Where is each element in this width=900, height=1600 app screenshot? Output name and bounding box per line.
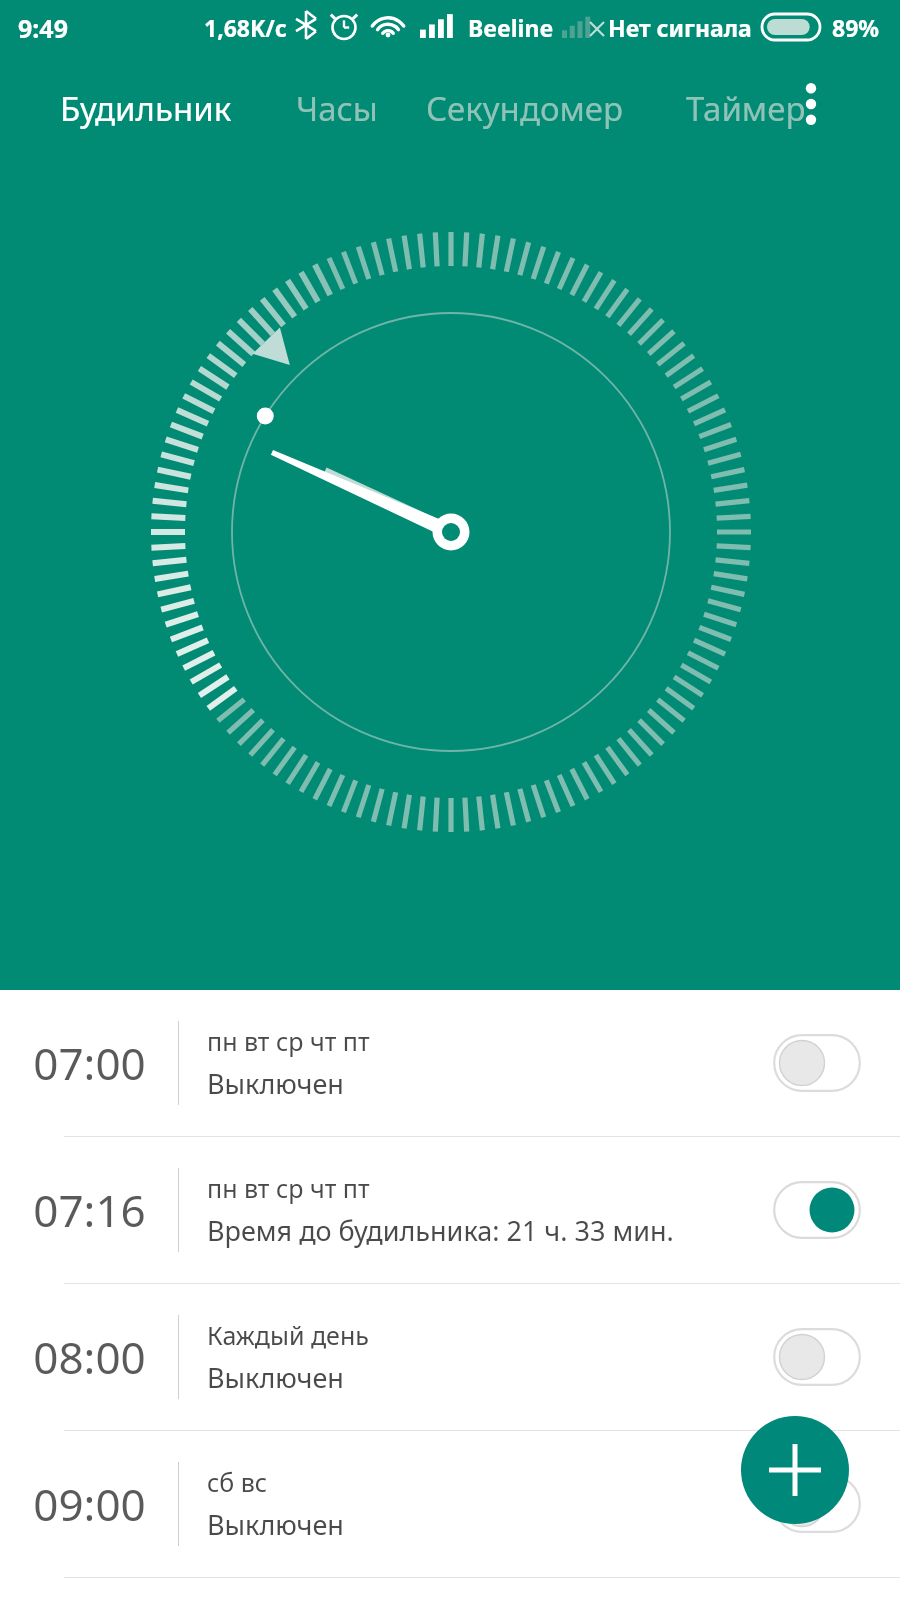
staticText: Секундомер — [426, 86, 624, 131]
staticText: Будильник — [60, 86, 232, 131]
button[interactable]: 07:00 — [0, 990, 900, 1136]
staticText: Каждый день — [207, 1318, 369, 1352]
staticText: 07:00 — [33, 1033, 146, 1093]
button[interactable]: Alarm off — [772, 1326, 862, 1388]
button[interactable]: Alarm on — [772, 1179, 862, 1241]
button[interactable]: More options — [790, 76, 832, 132]
button[interactable]: Add alarm — [741, 1416, 849, 1524]
staticText: Выключен — [207, 1359, 344, 1396]
staticText: Выключен — [207, 1065, 344, 1102]
staticText: 1,68K/c — [204, 12, 287, 43]
staticText: Beeline — [468, 12, 554, 43]
button[interactable]: 07:16 — [0, 1137, 900, 1283]
staticText: 08:00 — [33, 1327, 146, 1387]
staticText: Время до будильника: 21 ч. 33 мин. — [207, 1212, 674, 1249]
staticText: Выключен — [207, 1506, 344, 1543]
staticText: пн вт ср чт пт — [207, 1171, 370, 1205]
button[interactable]: Часы — [288, 80, 386, 137]
staticText: Часы — [296, 86, 378, 131]
staticText: 09:00 — [33, 1474, 146, 1534]
staticText: Нет сигнала — [608, 12, 752, 43]
staticText: пн вт ср чт пт — [207, 1024, 370, 1058]
staticText: Таймер — [686, 86, 806, 131]
staticText: сб вс — [207, 1465, 268, 1499]
button[interactable]: Alarm off — [772, 1032, 862, 1094]
button[interactable]: 08:00 — [0, 1284, 900, 1430]
button[interactable]: Alarm off — [772, 1473, 862, 1535]
staticText: 89% — [832, 12, 880, 43]
button[interactable]: 09:00 — [0, 1431, 900, 1577]
staticText: 9:49 — [18, 11, 68, 45]
button[interactable]: Будильник — [52, 80, 240, 137]
button[interactable]: Таймер — [678, 80, 814, 137]
staticText: 07:16 — [33, 1180, 146, 1240]
button[interactable]: Секундомер — [418, 80, 632, 137]
